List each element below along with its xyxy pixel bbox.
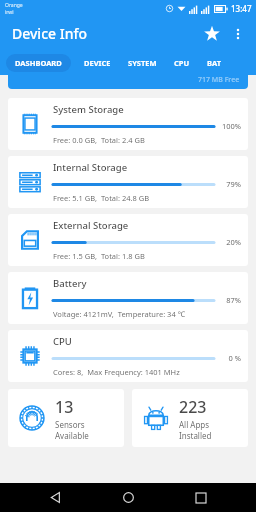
button[interactable]: System Storage <box>8 98 248 150</box>
button[interactable]: More options <box>226 22 250 46</box>
button[interactable]: DEVICE <box>82 54 113 72</box>
button[interactable]: 717 MB Free <box>8 75 248 89</box>
button[interactable]: CPU <box>172 54 192 72</box>
button[interactable]: External Storage <box>8 214 248 266</box>
staticText: 100% <box>219 121 241 131</box>
staticText: Device Info <box>12 24 87 43</box>
staticText: 20% <box>219 237 241 247</box>
staticText: Installed <box>179 430 212 441</box>
staticText: External Storage <box>53 219 129 232</box>
button[interactable]: Recents <box>183 483 219 512</box>
staticText: BAT <box>207 58 221 68</box>
staticText: irwi <box>5 9 14 16</box>
button[interactable]: SYSTEM <box>126 54 159 72</box>
button[interactable]: Apps <box>132 389 248 447</box>
staticText: Free: 1.5 GB, Total: 1.8 GB <box>53 251 145 261</box>
staticText: Available <box>55 430 89 441</box>
staticText: System Storage <box>53 103 124 116</box>
staticText: Free: 0.0 GB, Total: 2.4 GB <box>53 135 145 145</box>
staticText: 0 % <box>219 353 241 363</box>
staticText: CPU <box>53 335 72 348</box>
staticText: 13 <box>55 396 74 418</box>
button[interactable]: Sensors <box>8 389 124 447</box>
staticText: Voltage: 4121mV, Temperature: 34 ℃ <box>53 309 186 319</box>
button[interactable]: BAT <box>205 54 223 72</box>
staticText: 13:47 <box>231 3 252 14</box>
staticText: DASHBOARD <box>15 58 62 68</box>
staticText: 87% <box>219 295 241 305</box>
button[interactable]: Favorite <box>198 20 226 48</box>
staticText: Sensors <box>55 419 85 430</box>
staticText: DEVICE <box>84 58 111 68</box>
button[interactable]: Home <box>110 483 146 512</box>
staticText: Cores: 8, Max Frequency: 1401 MHz <box>53 367 180 377</box>
staticText: Free: 5.1 GB, Total: 24.8 GB <box>53 193 150 203</box>
staticText: All Apps <box>179 419 210 430</box>
staticText: 717 MB Free <box>198 75 240 85</box>
button[interactable]: CPU <box>8 330 248 382</box>
staticText: 79% <box>219 179 241 189</box>
staticText: SYSTEM <box>128 58 157 68</box>
button[interactable]: Internal Storage <box>8 156 248 208</box>
staticText: Battery <box>53 277 87 290</box>
staticText: CPU <box>174 58 190 68</box>
staticText: Orange <box>5 2 23 9</box>
staticText: Internal Storage <box>53 161 128 174</box>
staticText: 223 <box>179 396 207 418</box>
button[interactable]: Back <box>37 483 73 512</box>
button[interactable]: Battery <box>8 272 248 324</box>
button[interactable]: DASHBOARD <box>6 54 71 72</box>
